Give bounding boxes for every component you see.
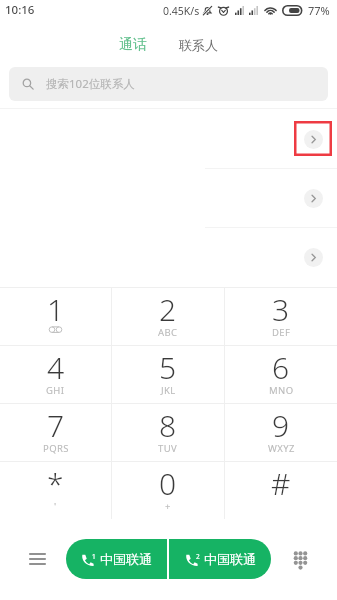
- staticText: 通话: [119, 36, 147, 54]
- button[interactable]: 3: [225, 288, 337, 345]
- staticText: *: [47, 463, 64, 504]
- staticText: 2: [196, 552, 200, 561]
- staticText: 0: [159, 463, 177, 504]
- staticText: 9: [272, 405, 290, 446]
- staticText: JKL: [161, 384, 176, 397]
- staticText: +: [165, 500, 171, 513]
- staticText: 3: [272, 289, 290, 330]
- staticText: 搜索102位联系人: [46, 76, 135, 92]
- button[interactable]: 9: [225, 404, 337, 461]
- staticText: 5: [159, 347, 177, 388]
- staticText: 0.45K/s: [163, 4, 200, 18]
- button[interactable]: 联系人: [171, 32, 226, 58]
- button[interactable]: 6: [225, 346, 337, 403]
- staticText: 4: [47, 347, 65, 388]
- staticText: 77%: [308, 3, 330, 18]
- button[interactable]: 1: [66, 539, 167, 579]
- staticText: 中国联通: [100, 551, 152, 567]
- staticText: PQRS: [43, 442, 69, 455]
- button[interactable]: *: [0, 462, 111, 519]
- staticText: ABC: [158, 326, 178, 339]
- button[interactable]: Call details: [304, 130, 323, 149]
- button[interactable]: 1: [0, 288, 111, 345]
- staticText: GHI: [46, 384, 65, 397]
- staticText: DEF: [272, 326, 291, 339]
- staticText: 2: [159, 289, 177, 330]
- staticText: 7: [47, 405, 65, 446]
- button[interactable]: 搜索102位联系人: [9, 67, 328, 101]
- button[interactable]: Dialpad: [280, 540, 320, 580]
- staticText: 8: [159, 405, 177, 446]
- staticText: MNO: [269, 384, 294, 397]
- button[interactable]: #: [225, 462, 337, 519]
- staticText: ': [54, 500, 57, 513]
- staticText: #: [271, 463, 291, 504]
- button[interactable]: Menu: [17, 538, 58, 579]
- staticText: 1: [47, 289, 65, 330]
- staticText: 10:16: [5, 2, 35, 18]
- staticText: 6: [272, 347, 290, 388]
- button[interactable]: 7: [0, 404, 111, 461]
- button[interactable]: 5: [112, 346, 224, 403]
- button[interactable]: Call details: [304, 248, 323, 267]
- staticText: 1: [92, 552, 96, 561]
- staticText: 联系人: [179, 37, 218, 53]
- staticText: WXYZ: [268, 442, 295, 455]
- button[interactable]: 4: [0, 346, 111, 403]
- button[interactable]: 0: [112, 462, 224, 519]
- button[interactable]: 2: [112, 288, 224, 345]
- button[interactable]: 2: [169, 539, 271, 579]
- button[interactable]: Call details: [0, 169, 337, 228]
- button[interactable]: 通话: [111, 31, 155, 59]
- button[interactable]: Call details: [304, 189, 323, 208]
- staticText: 中国联通: [204, 551, 256, 567]
- button[interactable]: 8: [112, 404, 224, 461]
- button[interactable]: Call details: [0, 109, 337, 169]
- staticText: TUV: [158, 442, 178, 455]
